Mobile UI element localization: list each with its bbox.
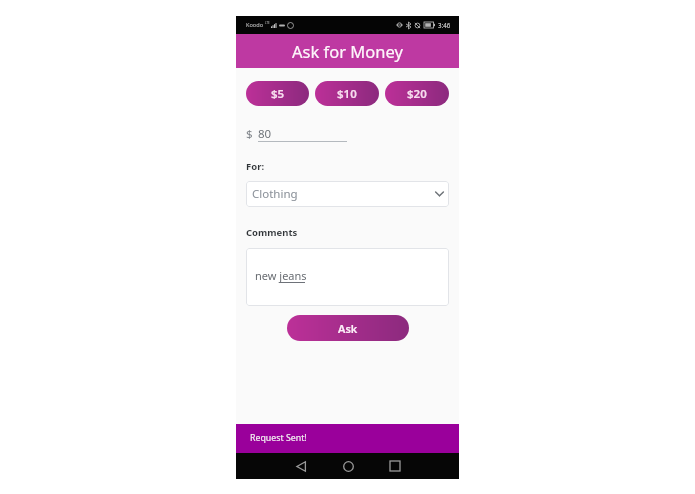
staticText: $10 — [337, 86, 357, 102]
staticText: $ — [246, 126, 253, 142]
staticText: $20 — [407, 86, 427, 102]
staticText: Ask for Money — [292, 40, 403, 62]
button[interactable]: Home — [335, 453, 361, 479]
staticText: 3:46 — [438, 21, 451, 29]
button[interactable]: $10 — [315, 81, 379, 106]
button[interactable]: $5 — [246, 81, 309, 106]
staticText: Request Sent! — [250, 432, 307, 444]
staticText: LTE — [265, 21, 270, 25]
button[interactable]: Ask — [287, 315, 409, 341]
staticText: new jeans — [255, 268, 307, 283]
other: Expand — [435, 191, 444, 197]
button[interactable]: Back — [288, 453, 314, 479]
button[interactable]: new jeans — [246, 248, 449, 306]
button[interactable]: Clothing — [246, 181, 449, 207]
button[interactable]: $20 — [385, 81, 449, 106]
staticText: Koodo — [246, 21, 264, 29]
staticText: Comments — [246, 226, 298, 239]
staticText: For: — [246, 160, 265, 173]
staticText: 80 — [258, 126, 272, 142]
button[interactable]: Recents — [382, 453, 408, 479]
staticText: $5 — [271, 86, 285, 102]
staticText: Ask — [338, 321, 358, 336]
staticText: Clothing — [252, 186, 298, 202]
